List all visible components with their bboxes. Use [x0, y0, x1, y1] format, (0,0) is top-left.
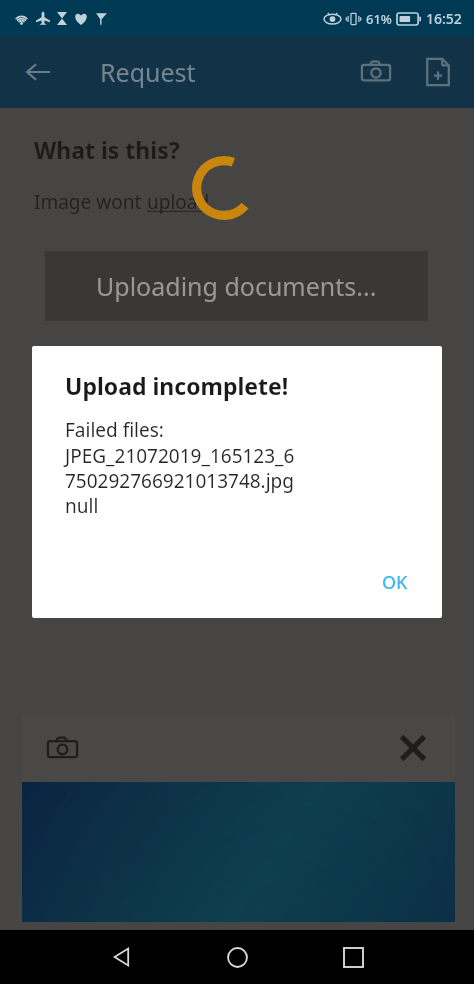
staticText: Upload incomplete! [65, 370, 289, 401]
staticText: 16:52 [426, 9, 462, 28]
staticText: Uploading documents... [96, 269, 377, 303]
staticText: 61% [366, 10, 392, 28]
staticText: Image wont [34, 189, 147, 215]
button[interactable]: Recent apps [295, 930, 411, 984]
staticText: What is this? [34, 134, 180, 165]
staticText: Request [100, 55, 196, 89]
button[interactable]: Back [14, 48, 62, 96]
button[interactable]: Add document [418, 52, 458, 92]
button[interactable]: upload [147, 189, 210, 215]
staticText: Failed files: JPEG_21072019_165123_6 750… [65, 417, 295, 518]
button[interactable]: Home [179, 930, 295, 984]
button[interactable]: Take photo [356, 52, 396, 92]
button[interactable]: Camera [40, 726, 84, 770]
button[interactable]: OK [366, 561, 424, 604]
button[interactable]: Back [63, 930, 179, 984]
staticText: OK [382, 570, 408, 595]
button[interactable]: Remove attachment [391, 726, 435, 770]
